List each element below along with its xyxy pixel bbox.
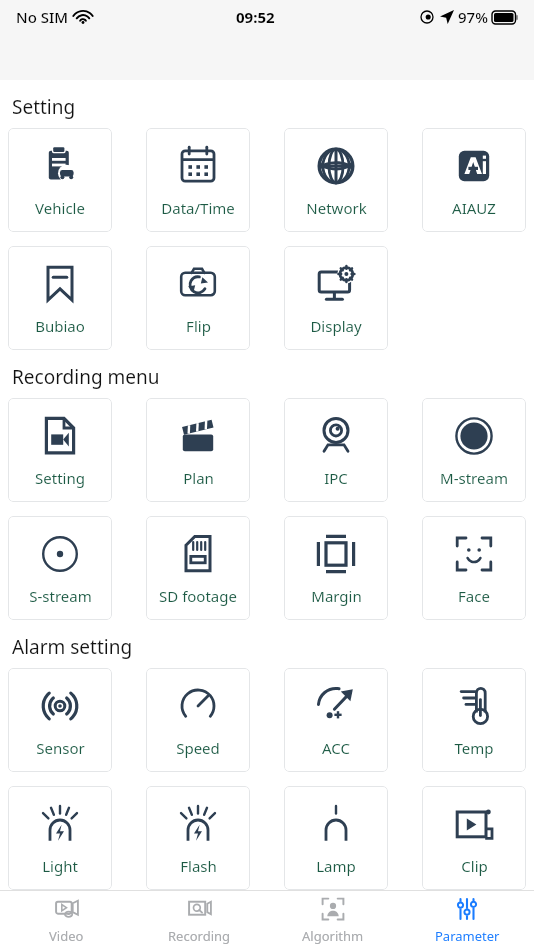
button[interactable]: Temp <box>422 668 526 772</box>
button[interactable]: S-stream <box>8 516 112 620</box>
staticText: Algorithm <box>302 927 364 945</box>
staticText: IPC <box>324 468 348 488</box>
button[interactable]: Network <box>284 128 388 232</box>
button[interactable]: SD footage <box>146 516 250 620</box>
button[interactable]: Parameter <box>400 891 534 950</box>
staticText: Plan <box>183 468 214 488</box>
button[interactable]: Data/Time <box>146 128 250 232</box>
staticText: Bubiao <box>35 316 85 336</box>
staticText: Data/Time <box>161 198 235 218</box>
staticText: Display <box>310 316 362 336</box>
button[interactable]: ACC <box>284 668 388 772</box>
staticText: Speed <box>176 738 220 758</box>
staticText: Parameter <box>435 927 500 945</box>
staticText: Face <box>458 586 490 606</box>
staticText: Flip <box>186 316 211 336</box>
staticText: Video <box>49 927 84 945</box>
staticText: Light <box>42 856 78 876</box>
staticText: ACC <box>322 738 350 758</box>
staticText: AIAUZ <box>452 198 496 218</box>
button[interactable]: Recording <box>133 891 266 950</box>
button[interactable]: Bubiao <box>8 246 112 350</box>
button[interactable]: Video <box>0 891 133 950</box>
button[interactable]: Speed <box>146 668 250 772</box>
button[interactable]: Margin <box>284 516 388 620</box>
staticText: Temp <box>454 738 494 758</box>
staticText: Setting <box>35 468 85 488</box>
staticText: Flash <box>180 856 217 876</box>
staticText: Sensor <box>36 738 85 758</box>
button[interactable]: Setting <box>8 398 112 502</box>
staticText: M-stream <box>440 468 508 488</box>
staticText: Margin <box>311 586 362 606</box>
staticText: 09:52 <box>236 7 275 27</box>
staticText: Alarm setting <box>12 634 133 660</box>
button[interactable]: AIAUZ <box>422 128 526 232</box>
staticText: Recording <box>168 927 231 945</box>
staticText: 97% <box>458 7 488 27</box>
button[interactable]: Sensor <box>8 668 112 772</box>
staticText: No SIM <box>16 7 69 27</box>
button[interactable]: Display <box>284 246 388 350</box>
button[interactable]: Lamp <box>284 786 388 890</box>
button[interactable]: M-stream <box>422 398 526 502</box>
staticText: Vehicle <box>35 198 85 218</box>
button[interactable]: Flash <box>146 786 250 890</box>
button[interactable]: Face <box>422 516 526 620</box>
button[interactable]: Light <box>8 786 112 890</box>
button[interactable]: Vehicle <box>8 128 112 232</box>
staticText: Network <box>306 198 367 218</box>
button[interactable]: Algorithm <box>266 891 400 950</box>
button[interactable]: IPC <box>284 398 388 502</box>
staticText: SD footage <box>159 586 237 606</box>
staticText: Lamp <box>316 856 356 876</box>
staticText: Clip <box>461 856 488 876</box>
staticText: Recording menu <box>12 364 160 390</box>
button[interactable]: Plan <box>146 398 250 502</box>
staticText: S-stream <box>29 586 92 606</box>
button[interactable]: Flip <box>146 246 250 350</box>
staticText: Setting <box>12 94 76 120</box>
button[interactable]: Clip <box>422 786 526 890</box>
